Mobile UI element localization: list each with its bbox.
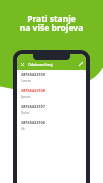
button[interactable]: 38765432107: [17, 102, 86, 118]
staticText: Sit: [21, 127, 25, 131]
button[interactable]: 38765432108: [17, 86, 86, 102]
button[interactable]: 38765432109: [17, 70, 86, 86]
staticText: Prati stanje na više brojeva: [0, 13, 103, 33]
button[interactable]: Edit: [75, 58, 86, 70]
staticText: 38765432108: [21, 88, 45, 93]
button[interactable]: Close: [17, 58, 28, 70]
staticText: 38765432106: [21, 120, 45, 125]
staticText: Odabrani broj: [28, 62, 53, 67]
staticText: Lorem: [21, 79, 31, 83]
staticText: Ipsum: [21, 95, 31, 99]
staticText: Dolor: [21, 111, 30, 115]
staticText: 38765432107: [21, 104, 45, 109]
button[interactable]: 38765432106: [17, 118, 86, 134]
staticText: 38765432109: [21, 72, 45, 77]
